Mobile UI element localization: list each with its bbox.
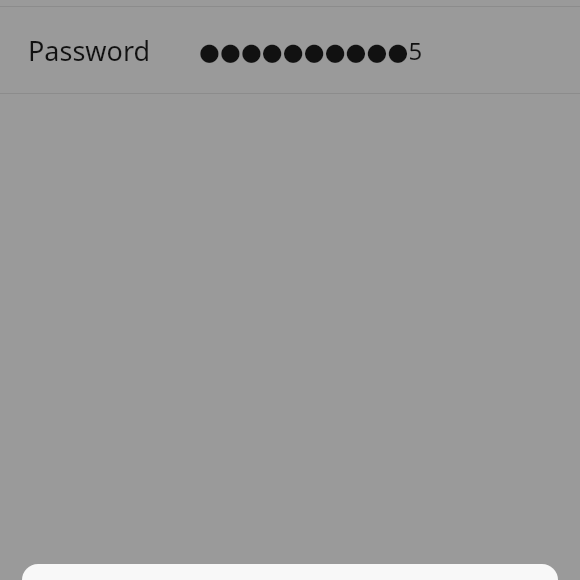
staticText: Password xyxy=(28,32,151,69)
button[interactable]: Bottom sheet xyxy=(22,564,558,580)
button[interactable]: Password xyxy=(0,7,580,93)
staticText: ●●●●●●●●●●5 xyxy=(199,34,423,67)
